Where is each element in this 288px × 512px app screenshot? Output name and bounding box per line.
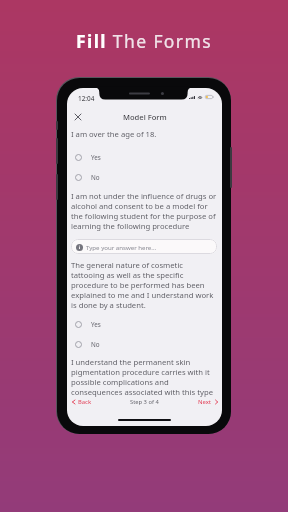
staticText: No [91, 173, 100, 182]
staticText: The general nature of cosmetic tattooing… [71, 260, 217, 310]
button[interactable]: Yes [71, 314, 217, 334]
button[interactable]: No [71, 334, 217, 354]
staticText: Yes [91, 320, 101, 329]
staticText: I understand the permanent skin pigmenta… [71, 357, 217, 397]
button[interactable]: Next [198, 398, 218, 406]
staticText: I am not under the influence of drugs or… [71, 191, 217, 231]
button[interactable]: Yes [71, 147, 217, 167]
staticText: Step 3 of 4 [130, 398, 159, 406]
staticText: Back [78, 398, 92, 406]
button[interactable]: Back [72, 398, 92, 406]
staticText: I am over the age of 18. [71, 129, 217, 139]
button[interactable]: No [71, 167, 217, 187]
button[interactable]: Close [71, 110, 84, 123]
staticText: Next [198, 398, 212, 406]
staticText: Yes [91, 153, 101, 162]
staticText: Type your answer here... [86, 243, 157, 251]
staticText: Fill The Forms [76, 29, 213, 53]
staticText: Model Form [123, 112, 167, 122]
button[interactable]: Type your answer here... [71, 239, 217, 254]
staticText: 12:04 [78, 94, 95, 103]
staticText: No [91, 340, 100, 349]
